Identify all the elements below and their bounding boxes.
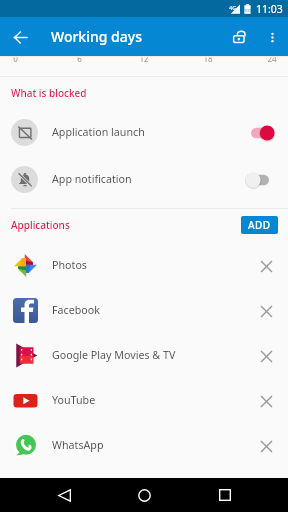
button[interactable]: Remove Google Play Movies & TV bbox=[250, 340, 282, 372]
button[interactable]: YouTube bbox=[0, 378, 288, 423]
button[interactable]: WhatsApp bbox=[0, 423, 288, 468]
button[interactable]: Recents bbox=[208, 478, 242, 512]
staticText: Photos bbox=[52, 258, 87, 273]
button[interactable]: More options bbox=[256, 21, 288, 53]
staticText: 18 bbox=[203, 53, 213, 64]
button[interactable]: App notification bbox=[246, 168, 276, 192]
staticText: 11:03 bbox=[256, 2, 283, 16]
button[interactable]: Remove Facebook bbox=[250, 295, 282, 327]
staticText: What is blocked bbox=[11, 86, 288, 100]
staticText: Facebook bbox=[52, 303, 100, 318]
staticText: Applications bbox=[11, 218, 70, 232]
staticText: WhatsApp bbox=[52, 438, 104, 453]
button[interactable]: Google Play Movies & TV bbox=[0, 333, 288, 378]
button[interactable]: Remove YouTube bbox=[250, 385, 282, 417]
staticText: Google Play Movies & TV bbox=[52, 348, 176, 363]
button[interactable]: Remove WhatsApp bbox=[250, 430, 282, 462]
staticText: ADD bbox=[248, 218, 271, 232]
staticText: 12 bbox=[139, 53, 149, 64]
staticText: Working days bbox=[51, 27, 142, 46]
staticText: App notification bbox=[52, 172, 132, 187]
button[interactable]: Application launch bbox=[0, 109, 288, 156]
button[interactable]: Home bbox=[127, 478, 161, 512]
button[interactable]: Remove Photos bbox=[250, 250, 282, 282]
staticText: Application launch bbox=[52, 125, 145, 140]
button[interactable]: Back bbox=[47, 478, 81, 512]
staticText: 100 bbox=[244, 8, 251, 13]
button[interactable]: Application launch bbox=[246, 121, 276, 145]
button[interactable]: App notification bbox=[0, 156, 288, 203]
staticText: YouTube bbox=[52, 393, 96, 408]
button[interactable]: ADD bbox=[241, 216, 278, 234]
staticText: 24 bbox=[267, 53, 277, 64]
staticText: 0 bbox=[13, 53, 18, 64]
button[interactable]: Unlock bbox=[218, 18, 256, 56]
staticText: 6 bbox=[77, 53, 82, 64]
button[interactable]: Back bbox=[1, 18, 39, 56]
button[interactable]: Facebook bbox=[0, 288, 288, 333]
staticText: 4G bbox=[229, 4, 237, 11]
button[interactable]: Photos bbox=[0, 243, 288, 288]
